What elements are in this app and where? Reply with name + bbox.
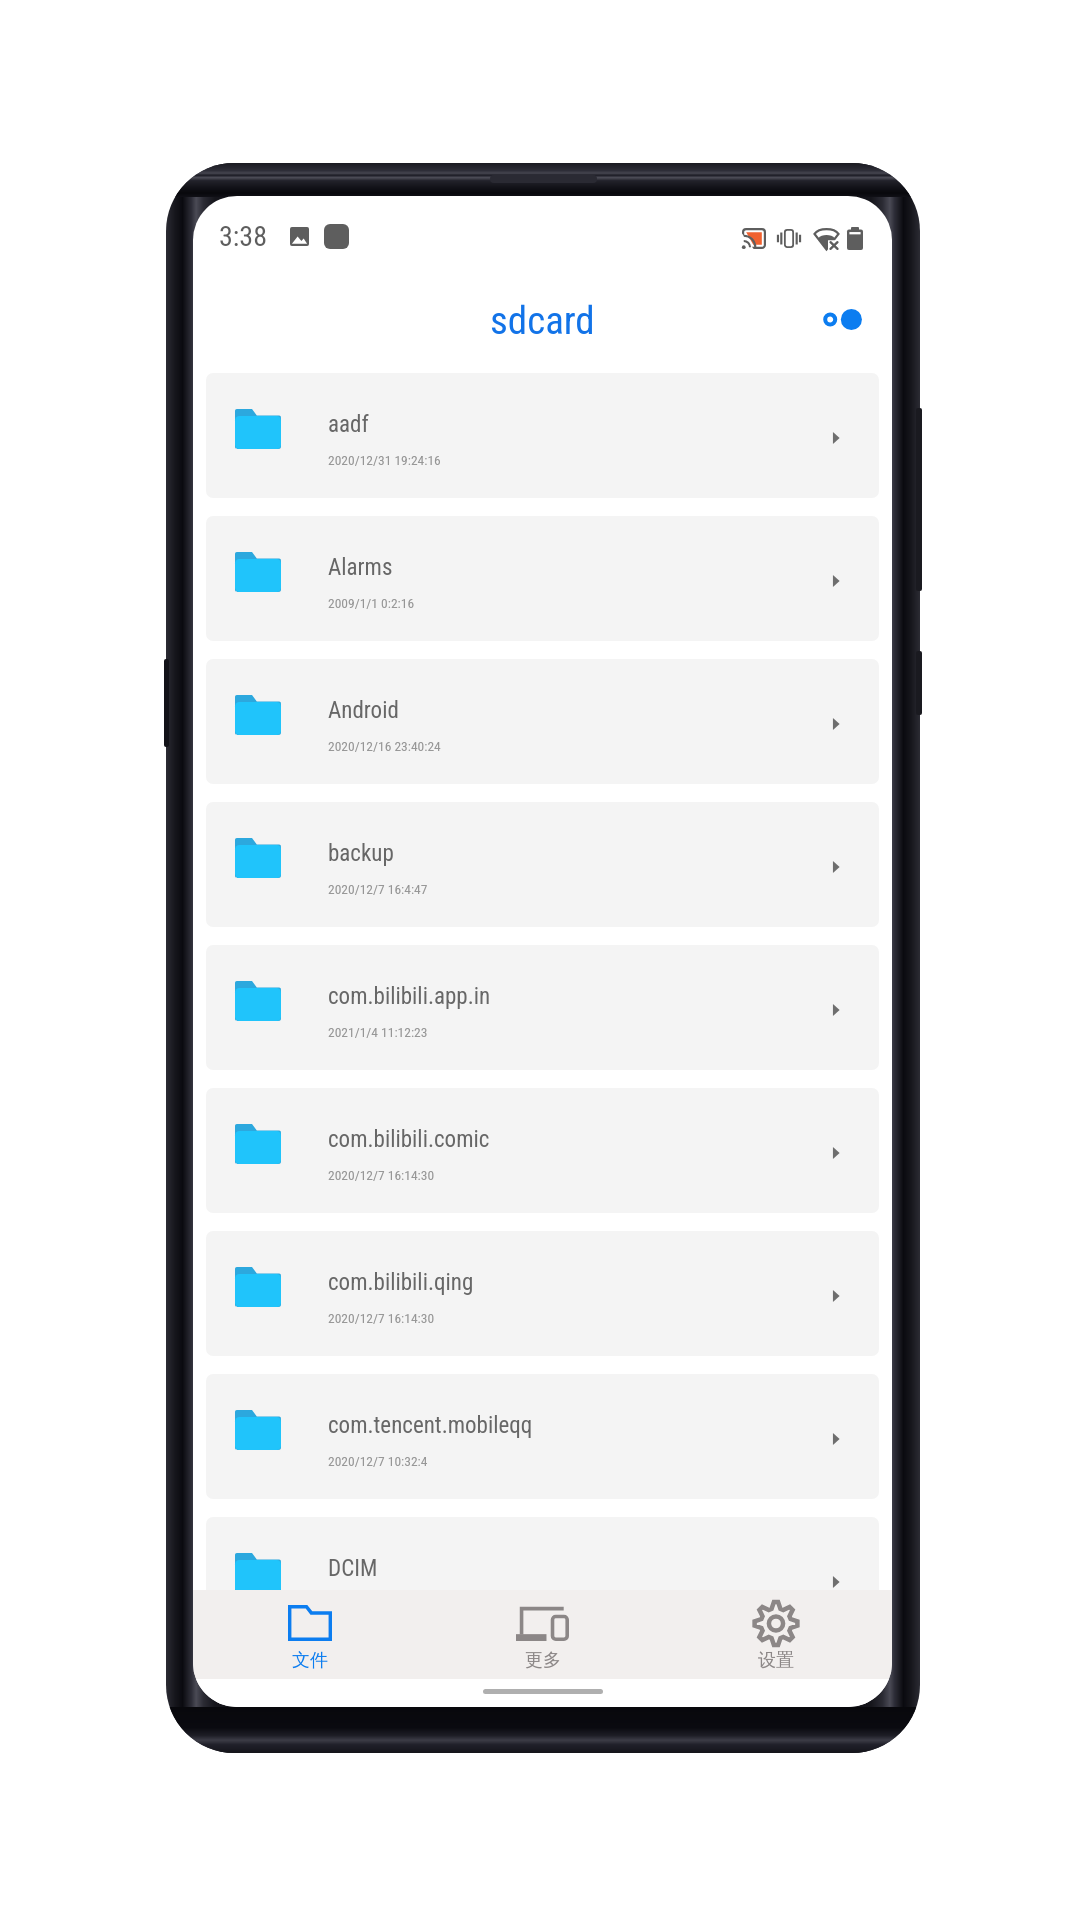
button[interactable]: 文件 <box>193 1590 426 1679</box>
button[interactable]: com.bilibili.app.in <box>206 945 879 1070</box>
staticText: backup <box>328 840 394 867</box>
button[interactable]: DCIM <box>206 1517 879 1642</box>
staticText: com.tencent.mobileqq <box>328 1412 533 1439</box>
staticText: Alarms <box>328 554 393 581</box>
staticText: 文件 <box>292 1649 328 1672</box>
staticText: 3:38 <box>219 220 268 253</box>
staticText: 2020/12/7 16:14:30 <box>328 1310 435 1326</box>
button[interactable]: 更多 <box>426 1590 659 1679</box>
staticText: 2020/12/7 10:32:4 <box>328 1453 428 1469</box>
button[interactable]: aadf <box>206 373 879 498</box>
staticText: 2020/12/31 19:24:16 <box>328 452 441 468</box>
staticText: 2020/12/7 16:4:47 <box>328 881 428 897</box>
staticText: com.bilibili.qing <box>328 1269 474 1296</box>
staticText: sdcard <box>490 298 595 344</box>
staticText: com.bilibili.app.in <box>328 983 491 1010</box>
staticText: aadf <box>328 411 369 438</box>
staticText: DCIM <box>328 1555 378 1582</box>
button[interactable]: backup <box>206 802 879 927</box>
staticText: 2020/12/7 10:32:4 <box>328 1596 428 1612</box>
button[interactable]: Android <box>206 659 879 784</box>
button[interactable]: com.bilibili.qing <box>206 1231 879 1356</box>
staticText: 更多 <box>525 1649 561 1672</box>
staticText: com.bilibili.comic <box>328 1126 490 1153</box>
button[interactable]: com.tencent.mobileqq <box>206 1374 879 1499</box>
staticText: 2020/12/16 23:40:24 <box>328 738 441 754</box>
staticText: 设置 <box>758 1649 794 1672</box>
staticText: Android <box>328 697 399 724</box>
staticText: 2020/12/7 16:14:30 <box>328 1167 435 1183</box>
button[interactable]: 设置 <box>659 1590 892 1679</box>
button[interactable]: Switch view mode <box>814 291 870 347</box>
staticText: 2021/1/4 11:12:23 <box>328 1024 428 1040</box>
staticText: 2009/1/1 0:2:16 <box>328 595 415 611</box>
button[interactable]: com.bilibili.comic <box>206 1088 879 1213</box>
button[interactable]: Alarms <box>206 516 879 641</box>
